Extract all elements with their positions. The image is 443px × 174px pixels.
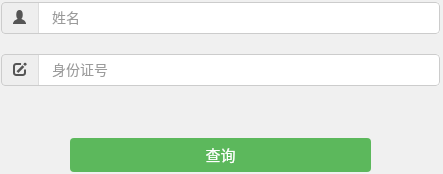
- button[interactable]: 查询: [70, 138, 371, 172]
- other: ID number: [1, 54, 38, 86]
- button[interactable]: ID number: [1, 54, 440, 86]
- staticText: 身份证号: [52, 59, 108, 79]
- staticText: 姓名: [52, 7, 80, 27]
- button[interactable]: Name: [1, 2, 440, 34]
- staticText: 查询: [205, 144, 236, 166]
- other: Name: [1, 2, 38, 34]
